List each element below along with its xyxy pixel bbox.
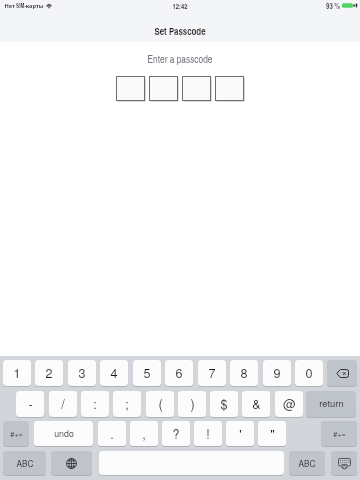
button[interactable]: ) — [178, 391, 206, 417]
staticText: 1 — [13, 364, 21, 382]
button[interactable]: ( — [146, 391, 174, 417]
button[interactable]: 7 — [198, 360, 226, 386]
staticText: ABC — [298, 457, 316, 469]
staticText: Set Passcode — [0, 24, 360, 38]
button[interactable]: : — [81, 391, 109, 417]
button[interactable]: ABC — [3, 451, 46, 475]
staticText: 3 — [78, 364, 86, 382]
staticText: 93 % — [326, 1, 340, 11]
staticText: 0 — [305, 364, 313, 382]
button[interactable]: - — [16, 391, 44, 417]
staticText: / — [61, 395, 65, 413]
button[interactable]: 1 — [3, 360, 31, 386]
staticText: ) — [190, 395, 195, 413]
staticText: ! — [206, 425, 210, 443]
button[interactable]: 8 — [230, 360, 258, 386]
button[interactable]: Change keyboard — [51, 451, 92, 475]
staticText: return — [319, 396, 344, 409]
button[interactable]: . — [98, 421, 126, 446]
staticText: ABC — [16, 457, 34, 469]
button[interactable]: 9 — [263, 360, 291, 386]
staticText: - — [28, 395, 33, 413]
button[interactable]: ? — [162, 421, 190, 446]
button[interactable]: 6 — [165, 360, 193, 386]
staticText: 12:42 — [0, 1, 360, 11]
button[interactable] — [215, 76, 244, 101]
button[interactable]: #+= — [3, 421, 29, 446]
button[interactable] — [149, 76, 178, 101]
staticText: Enter a passcode — [0, 52, 360, 66]
button[interactable]: 0 — [295, 360, 323, 386]
staticText: ? — [172, 425, 180, 443]
button[interactable]: , — [130, 421, 158, 446]
staticText: @ — [283, 395, 296, 413]
button[interactable]: Hide keyboard — [331, 451, 357, 475]
staticText: ( — [158, 395, 163, 413]
staticText: ; — [125, 395, 129, 413]
button[interactable] — [116, 76, 145, 101]
staticText: 8 — [240, 364, 248, 382]
button[interactable] — [182, 76, 211, 101]
staticText: , — [142, 425, 146, 443]
button[interactable]: Backspace — [327, 360, 357, 386]
staticText: 2 — [45, 364, 53, 382]
button[interactable]: 2 — [35, 360, 63, 386]
button[interactable]: / — [49, 391, 77, 417]
button[interactable]: 5 — [133, 360, 161, 386]
button[interactable]: ' — [226, 421, 254, 446]
button[interactable]: undo — [34, 421, 93, 446]
staticText: 6 — [175, 364, 183, 382]
staticText: undo — [54, 427, 74, 440]
staticText: $ — [220, 395, 228, 413]
staticText: ' — [239, 425, 242, 443]
staticText: . — [110, 425, 114, 443]
button[interactable]: @ — [275, 391, 303, 417]
button[interactable]: 3 — [68, 360, 96, 386]
staticText: 9 — [273, 364, 281, 382]
button[interactable]: ABC — [289, 451, 325, 475]
staticText: & — [252, 395, 261, 413]
staticText: " — [270, 425, 275, 443]
button[interactable]: " — [258, 421, 286, 446]
staticText: 4 — [110, 364, 118, 382]
staticText: 5 — [143, 364, 151, 382]
staticText: #+= — [10, 429, 23, 439]
staticText: : — [93, 395, 97, 413]
button[interactable]: ! — [194, 421, 222, 446]
button[interactable]: & — [242, 391, 270, 417]
button[interactable]: return — [306, 391, 356, 417]
staticText: 7 — [208, 364, 216, 382]
button[interactable]: $ — [210, 391, 238, 417]
button[interactable]: #+= — [321, 421, 357, 446]
staticText: #+= — [333, 429, 346, 439]
button[interactable]: ; — [113, 391, 141, 417]
button[interactable]: 4 — [100, 360, 128, 386]
staticText: Нет SIM-карты — [4, 2, 44, 10]
